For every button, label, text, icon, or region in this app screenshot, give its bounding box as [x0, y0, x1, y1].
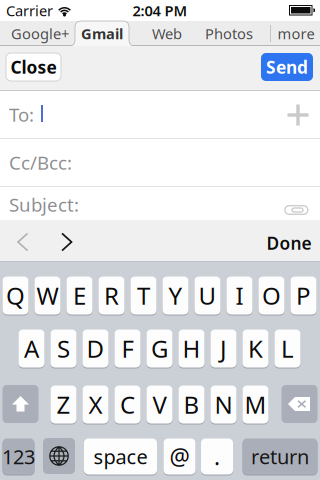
staticText: C [120, 389, 135, 420]
button[interactable]: O [258, 276, 284, 315]
staticText: Q [6, 280, 25, 311]
staticText: Close [10, 55, 56, 78]
staticText: E [73, 280, 86, 311]
staticText: To: [9, 102, 34, 127]
staticText: H [182, 333, 200, 364]
button[interactable]: Add recipient [280, 95, 316, 135]
staticText: T [137, 280, 150, 311]
button[interactable]: space [84, 438, 157, 475]
staticText: Cc/Bcc: [9, 150, 72, 175]
button[interactable]: Shift [2, 385, 38, 423]
button[interactable]: W [34, 276, 60, 315]
button[interactable]: Z [50, 385, 76, 424]
button[interactable]: . [201, 438, 233, 475]
staticText: W [36, 280, 58, 311]
button[interactable]: Google+ [7, 21, 73, 46]
staticText: F [121, 333, 133, 364]
staticText: K [248, 333, 263, 364]
button[interactable]: 123 [2, 438, 34, 475]
staticText: Z [56, 389, 70, 420]
button[interactable]: G [146, 329, 172, 368]
staticText: @ [169, 441, 189, 471]
button[interactable]: M [242, 385, 268, 424]
button[interactable]: Q [2, 276, 28, 315]
staticText: Gmail [81, 24, 123, 43]
staticText: N [214, 389, 232, 420]
button[interactable]: J [210, 329, 236, 368]
staticText: Send [266, 55, 308, 78]
button[interactable]: K [242, 329, 268, 368]
button[interactable]: I [226, 276, 252, 315]
staticText: V [152, 389, 166, 420]
button[interactable]: B [178, 385, 204, 424]
staticText: 123 [2, 443, 35, 470]
button[interactable]: @ [163, 438, 195, 475]
staticText: D [86, 333, 104, 364]
staticText: Google+ [11, 24, 69, 43]
button[interactable]: return [242, 438, 317, 475]
staticText: Web [152, 24, 182, 43]
button[interactable]: P [290, 276, 316, 315]
staticText: B [183, 389, 199, 420]
button[interactable]: Previous field [6, 225, 40, 259]
staticText: . [214, 441, 220, 471]
button[interactable]: Send [261, 53, 313, 81]
staticText: S [57, 333, 70, 364]
button[interactable]: L [274, 329, 300, 368]
staticText: X [88, 389, 102, 420]
staticText: Carrier [6, 1, 53, 20]
staticText: O [262, 280, 281, 311]
staticText: Done [266, 231, 311, 254]
button[interactable]: Attach file [279, 195, 314, 225]
button[interactable]: E [66, 276, 92, 315]
button[interactable]: V [146, 385, 172, 424]
button[interactable]: Done [263, 226, 315, 260]
button[interactable]: Y [162, 276, 188, 315]
staticText: I [235, 280, 243, 311]
staticText: Photos [205, 24, 253, 43]
button[interactable]: Web [141, 21, 193, 46]
button[interactable]: R [98, 276, 124, 315]
button[interactable]: more [272, 21, 320, 46]
staticText: return [251, 443, 309, 470]
staticText: more [277, 24, 314, 43]
button[interactable]: Gmail [69, 21, 135, 46]
staticText: U [198, 280, 216, 311]
staticText: Subject: [9, 192, 79, 217]
staticText: M [244, 389, 266, 420]
button[interactable]: Switch keyboard [43, 438, 75, 474]
button[interactable]: D [82, 329, 108, 368]
button[interactable]: U [194, 276, 220, 315]
button[interactable]: S [50, 329, 76, 368]
button[interactable]: Photos [198, 21, 260, 46]
button[interactable]: N [210, 385, 236, 424]
button[interactable]: A [18, 329, 44, 368]
staticText: P [296, 280, 311, 311]
button[interactable]: T [130, 276, 156, 315]
staticText: R [104, 280, 119, 311]
button[interactable]: Next field [50, 225, 84, 259]
staticText: space [93, 443, 147, 470]
staticText: 2:04 PM [132, 1, 187, 20]
staticText: Y [168, 280, 182, 311]
staticText: G [151, 333, 168, 364]
button[interactable]: Close [6, 53, 61, 81]
staticText: A [24, 333, 39, 364]
staticText: L [281, 333, 294, 364]
staticText: J [220, 333, 227, 364]
button[interactable]: H [178, 329, 204, 368]
button[interactable]: C [114, 385, 140, 424]
button[interactable]: X [82, 385, 108, 424]
button[interactable]: F [114, 329, 140, 368]
button[interactable]: Delete [281, 385, 317, 423]
